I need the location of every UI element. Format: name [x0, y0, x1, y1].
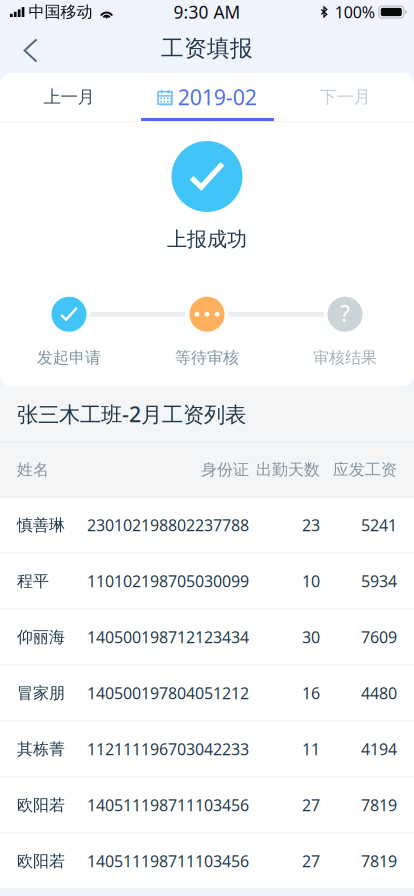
staticText: 审核结果: [313, 348, 377, 367]
staticText: 5934: [361, 570, 397, 592]
button[interactable]: 仰丽海: [0, 610, 414, 666]
staticText: 冒家朋: [17, 683, 65, 703]
staticText: 身份证: [201, 460, 249, 479]
staticText: 应发工资: [333, 460, 397, 479]
staticText: 7819: [361, 794, 397, 816]
button[interactable]: Back: [0, 24, 46, 73]
staticText: 23: [302, 514, 320, 536]
staticText: 5241: [361, 514, 397, 536]
staticText: 下一月: [319, 86, 370, 108]
staticText: 112111196703042233: [87, 738, 249, 760]
staticText: 140500198712123434: [87, 626, 249, 648]
button[interactable]: 上一月: [0, 73, 138, 121]
button[interactable]: 其栋菁: [0, 722, 414, 778]
button[interactable]: 程平: [0, 554, 414, 610]
staticText: 仰丽海: [17, 627, 65, 647]
staticText: 230102198802237788: [87, 514, 249, 536]
staticText: 其栋菁: [17, 739, 65, 759]
button[interactable]: 2019-02: [138, 73, 276, 121]
button[interactable]: 欧阳若: [0, 778, 414, 834]
staticText: 27: [302, 794, 320, 816]
staticText: 中国移动: [28, 2, 92, 22]
staticText: 上一月: [43, 86, 94, 108]
staticText: 2019-02: [178, 83, 257, 111]
staticText: 4194: [361, 738, 397, 760]
button[interactable]: 慎善琳: [0, 498, 414, 554]
staticText: 10: [302, 570, 320, 592]
staticText: 16: [302, 682, 320, 704]
button[interactable]: 欧阳若: [0, 834, 414, 890]
staticText: 欧阳若: [17, 795, 65, 815]
staticText: 上报成功: [167, 227, 247, 252]
staticText: 140511198711103456: [87, 794, 249, 816]
staticText: 140500197804051212: [87, 682, 249, 704]
staticText: 4480: [361, 682, 397, 704]
staticText: 程平: [17, 571, 49, 591]
button[interactable]: 冒家朋: [0, 666, 414, 722]
staticText: 30: [302, 626, 320, 648]
staticText: 7609: [361, 626, 397, 648]
staticText: 张三木工班-2月工资列表: [17, 400, 246, 428]
staticText: 发起申请: [37, 348, 101, 367]
staticText: 工资填报: [161, 35, 253, 62]
staticText: 等待审核: [175, 348, 239, 367]
staticText: 27: [302, 850, 320, 872]
staticText: 100%: [335, 1, 375, 23]
staticText: 110102198705030099: [87, 570, 249, 592]
staticText: 姓名: [17, 460, 49, 479]
staticText: 9:30 AM: [173, 0, 240, 23]
staticText: 140511198711103456: [87, 850, 249, 872]
staticText: 出勤天数: [256, 460, 320, 479]
staticText: ?: [340, 298, 350, 328]
staticText: 7819: [361, 850, 397, 872]
staticText: 11: [302, 738, 320, 760]
button[interactable]: 下一月: [276, 73, 414, 121]
staticText: 欧阳若: [17, 851, 65, 871]
staticText: 慎善琳: [17, 515, 65, 535]
